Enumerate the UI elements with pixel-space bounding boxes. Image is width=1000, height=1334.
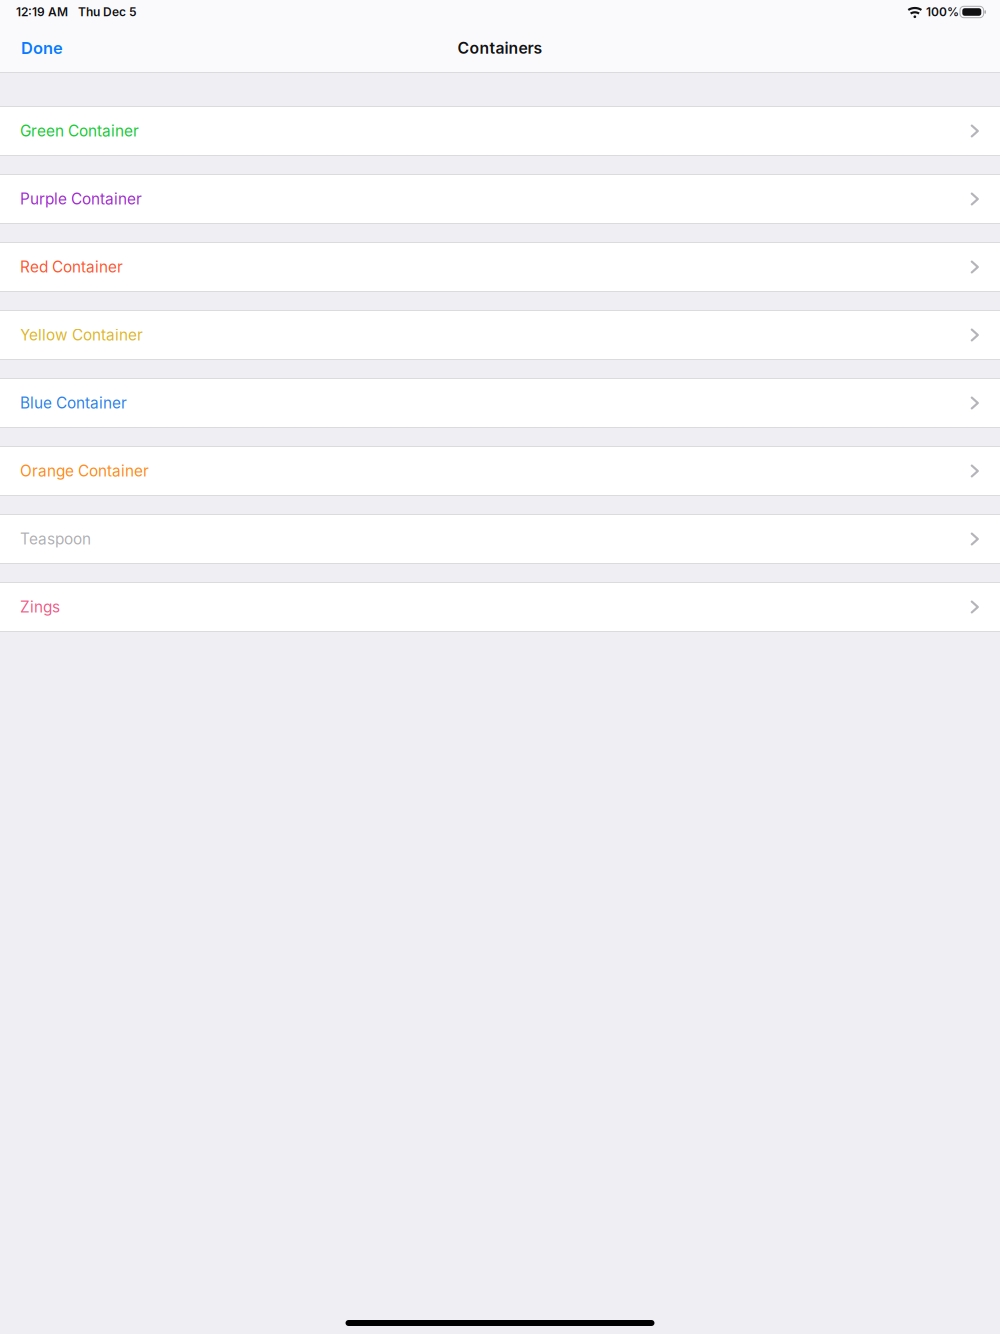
staticText: Blue Container [20, 394, 127, 412]
staticText: Containers [457, 38, 542, 57]
button[interactable]: Done [0, 28, 79, 68]
staticText: Thu Dec 5 [78, 5, 137, 19]
button[interactable]: Purple Container [0, 175, 1000, 223]
staticText: Orange Container [20, 462, 149, 480]
button[interactable]: Yellow Container [0, 311, 1000, 359]
staticText: Red Container [20, 258, 123, 276]
staticText: Done [21, 38, 63, 58]
button[interactable]: Orange Container [0, 447, 1000, 495]
staticText: Yellow Container [20, 326, 143, 344]
staticText: 100% [926, 5, 959, 19]
button[interactable]: Blue Container [0, 379, 1000, 427]
staticText: Purple Container [20, 190, 142, 208]
staticText: Zings [20, 598, 60, 616]
button[interactable]: Red Container [0, 243, 1000, 291]
button[interactable]: Teaspoon [0, 515, 1000, 563]
staticText: Teaspoon [20, 530, 91, 548]
button[interactable]: Green Container [0, 107, 1000, 155]
staticText: 12:19 AM [16, 5, 68, 19]
staticText: Green Container [20, 122, 139, 140]
button[interactable]: Zings [0, 583, 1000, 631]
